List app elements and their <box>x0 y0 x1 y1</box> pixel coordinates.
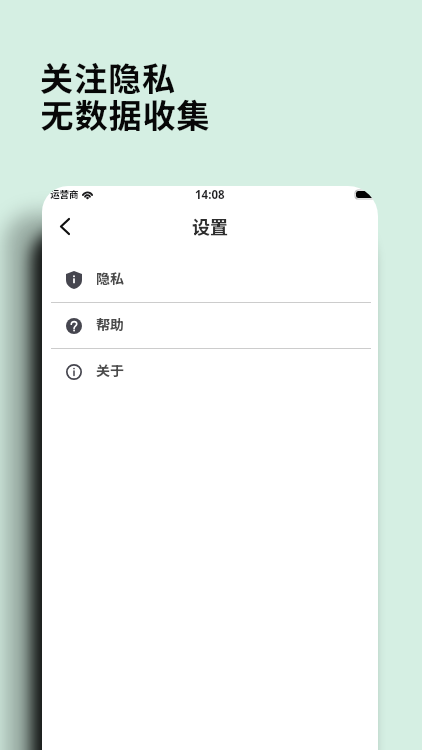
staticText: 运营商 <box>50 187 79 201</box>
staticText: 14:08 <box>195 187 225 203</box>
button[interactable]: 关于 <box>42 349 378 394</box>
button[interactable]: 帮助 <box>42 303 378 348</box>
staticText: 设置 <box>192 213 228 239</box>
staticText: 帮助 <box>96 314 124 334</box>
staticText: 关于 <box>96 360 124 380</box>
staticText: 关注隐私 无数据收集 <box>40 53 210 138</box>
staticText: 隐私 <box>96 268 124 288</box>
button[interactable]: 隐私 <box>42 257 378 302</box>
button[interactable]: Back <box>50 211 80 241</box>
